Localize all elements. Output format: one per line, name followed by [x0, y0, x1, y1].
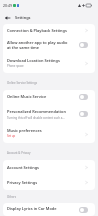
- button[interactable]: Toggle: [79, 94, 88, 100]
- staticText: Account & Privacy: [7, 151, 31, 155]
- staticText: Set up: [7, 134, 16, 138]
- button[interactable]: Toggle: [79, 111, 88, 117]
- staticText: Privacy Settings: [7, 180, 38, 185]
- button[interactable]: Download Location Settings: [3, 53, 95, 73]
- button[interactable]: Toggle: [79, 42, 88, 48]
- button[interactable]: Music preferences: [3, 125, 95, 143]
- button[interactable]: Toggle: [79, 207, 88, 213]
- staticText: Phone space: [7, 64, 24, 68]
- staticText: Account Settings: [7, 165, 39, 170]
- staticText: Download Location Settings: [7, 58, 60, 63]
- staticText: Online Music Service: [7, 94, 47, 99]
- button[interactable]: Personalized Recommendation: [3, 103, 95, 125]
- button[interactable]: Allow another app to play audio at the s…: [3, 37, 95, 53]
- staticText: Online Service Settings: [7, 81, 38, 85]
- staticText: Personalized Recommendation: [7, 109, 66, 114]
- staticText: Display Lyrics in Car Mode: [7, 206, 57, 211]
- staticText: 20:49: [3, 3, 12, 8]
- staticText: Settings: [15, 15, 31, 20]
- staticText: Others: [7, 195, 16, 199]
- button[interactable]: Online Music Service: [3, 90, 95, 103]
- staticText: Connection & Playback Settings: [7, 28, 67, 33]
- button[interactable]: Display Lyrics in Car Mode: [3, 203, 95, 216]
- button[interactable]: Account Settings: [3, 160, 95, 174]
- staticText: Allow another app to play audio at the s…: [7, 40, 68, 51]
- staticText: Turning this off will disable content su…: [7, 116, 65, 120]
- button[interactable]: Connection & Playback Settings: [3, 24, 95, 37]
- button[interactable]: Privacy Settings: [3, 174, 95, 190]
- button[interactable]: Back: [3, 13, 12, 22]
- staticText: Music preferences: [7, 128, 42, 133]
